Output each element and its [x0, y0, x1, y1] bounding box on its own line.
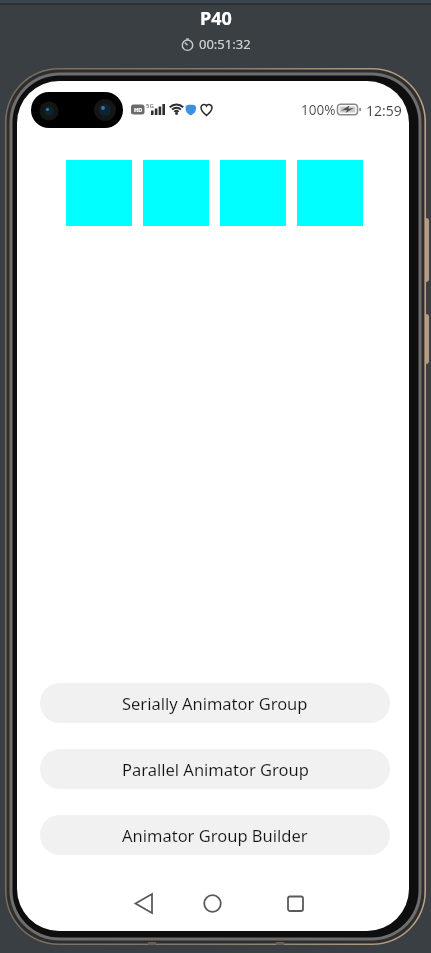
staticText: Serially Animator Group — [122, 692, 308, 714]
staticText: 12:59 — [366, 101, 402, 120]
button[interactable] — [120, 880, 168, 928]
staticText: Parallel Animator Group — [122, 758, 309, 780]
button[interactable] — [264, 880, 312, 928]
staticText: 100% — [301, 101, 336, 119]
staticText: HD — [134, 106, 143, 113]
staticText: Animator Group Builder — [122, 824, 308, 846]
button[interactable]: Parallel Animator Group — [40, 749, 390, 789]
button[interactable] — [189, 880, 237, 928]
staticText: 00:51:32 — [199, 35, 251, 53]
staticText: 5G — [146, 102, 154, 110]
button[interactable]: Serially Animator Group — [40, 683, 390, 723]
staticText: P40 — [200, 6, 232, 31]
button[interactable]: Animator Group Builder — [40, 815, 390, 855]
